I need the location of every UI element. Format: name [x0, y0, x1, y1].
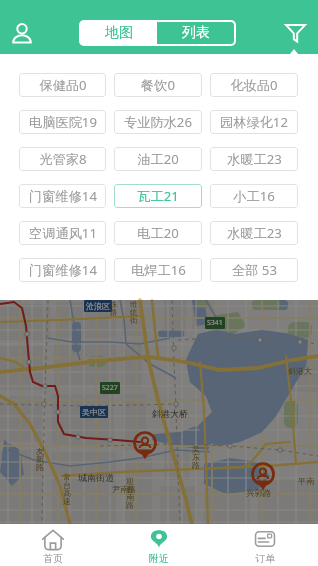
staticText: 维 统 街 [130, 300, 138, 325]
button[interactable]: 油工20 [114, 147, 202, 171]
staticText: 门窗维修14 [29, 261, 97, 279]
staticText: 化妆品0 [230, 76, 278, 94]
button[interactable]: 电工20 [114, 221, 202, 245]
button[interactable]: 首页 [0, 524, 106, 566]
staticText: 光管家8 [39, 150, 87, 168]
staticText: 城南街道 [78, 472, 114, 483]
button[interactable]: Account [3, 14, 41, 52]
staticText: 小工16 [233, 187, 275, 205]
button[interactable]: 门窗维修14 [19, 184, 106, 208]
staticText: 常 台 高 速 [63, 472, 71, 507]
staticText: 水暖工23 [227, 224, 282, 242]
button[interactable]: 水暖工23 [210, 147, 298, 171]
staticText: 餐饮0 [141, 76, 175, 94]
staticText: 电工20 [137, 224, 179, 242]
button[interactable]: 附近 [106, 524, 212, 566]
staticText: 吴中区 [82, 407, 106, 417]
staticText: 水暖工23 [227, 150, 282, 168]
staticText: 友 新 路 [36, 446, 44, 473]
button[interactable]: 保健品0 [19, 73, 106, 97]
staticText: 地图 [105, 24, 133, 42]
staticText: 沧浪区 [86, 301, 110, 311]
staticText: 平南 [298, 476, 314, 486]
button[interactable]: 光管家8 [19, 147, 106, 171]
staticText: 附近 [149, 552, 169, 565]
button[interactable]: Filter [274, 14, 312, 52]
staticText: 保健品0 [39, 76, 87, 94]
button[interactable]: 瓦工21 [114, 184, 202, 208]
staticText: 空调通风11 [29, 224, 97, 242]
staticText: S227 [102, 383, 118, 393]
staticText: 电脑医院19 [29, 113, 97, 131]
button[interactable]: 地图 [81, 22, 157, 44]
staticText: 吴 东 路 [192, 444, 200, 471]
button[interactable]: 全部 53 [210, 258, 298, 282]
staticText: 全部 53 [232, 261, 277, 279]
button[interactable]: 化妆品0 [210, 73, 298, 97]
button[interactable]: 餐饮0 [114, 73, 202, 97]
button[interactable]: 空调通风11 [19, 221, 106, 245]
staticText: 园林绿化12 [220, 113, 288, 131]
button[interactable]: 订单 [212, 524, 318, 566]
staticText: 列表 [182, 24, 210, 42]
staticText: 珠 路 [110, 300, 118, 317]
staticText: 专业防水26 [124, 113, 192, 131]
staticText: 尹南路 [112, 484, 136, 494]
staticText: S341 [207, 318, 223, 328]
staticText: 斜港大 [288, 366, 312, 376]
button[interactable]: 电脑医院19 [19, 110, 106, 134]
button[interactable]: 园林绿化12 [210, 110, 298, 134]
button[interactable]: 列表 [157, 22, 234, 44]
button[interactable]: 水暖工23 [210, 221, 298, 245]
button[interactable]: 专业防水26 [114, 110, 202, 134]
staticText: 油工20 [137, 150, 179, 168]
staticText: 电焊工16 [131, 261, 186, 279]
button[interactable]: 电焊工16 [114, 258, 202, 282]
staticText: 迎 春 南 路 [126, 476, 134, 511]
staticText: 门窗维修14 [29, 187, 97, 205]
staticText: 瓦工21 [137, 187, 179, 205]
staticText: 斜港大桥 [152, 408, 188, 419]
staticText: 兴郭路 [246, 488, 272, 499]
staticText: 首页 [43, 552, 63, 565]
button[interactable]: 小工16 [210, 184, 298, 208]
button[interactable]: 门窗维修14 [19, 258, 106, 282]
staticText: 订单 [255, 552, 275, 565]
